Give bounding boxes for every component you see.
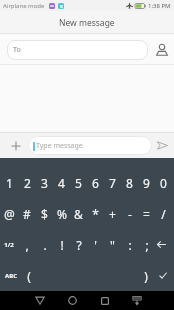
staticText: Type message [36, 141, 83, 151]
staticText: * [92, 206, 99, 222]
staticText: 7 [109, 175, 116, 191]
staticText: 0 [160, 175, 167, 191]
staticText: . [43, 237, 47, 253]
staticText: 6 [92, 175, 99, 191]
staticText: ! [60, 237, 64, 253]
staticText: 1 [6, 175, 13, 191]
staticText: " [110, 237, 115, 253]
staticText: , [25, 237, 29, 253]
staticText: 2 [24, 175, 31, 191]
staticText: ; [145, 237, 149, 253]
staticText: 4 [58, 175, 65, 191]
staticText: 3 [41, 175, 48, 191]
staticText: 8 [126, 175, 133, 191]
staticText: : [128, 237, 132, 253]
staticText: + [109, 206, 116, 222]
staticText: ABC [5, 272, 17, 280]
staticText: To [13, 45, 21, 55]
staticText: ) [144, 268, 148, 284]
staticText: ( [27, 268, 31, 284]
staticText: New message [59, 17, 115, 29]
staticText: 1:38 PM [148, 2, 171, 10]
staticText: # [23, 206, 31, 222]
staticText: = [143, 206, 150, 222]
staticText: @ [4, 206, 15, 222]
staticText: ' [94, 237, 97, 253]
staticText: & [74, 206, 83, 222]
staticText: 5 [75, 175, 82, 191]
staticText: Airplane mode [3, 2, 45, 10]
staticText: $ [41, 206, 48, 222]
staticText: - [128, 206, 132, 222]
staticText: ? [76, 237, 82, 253]
staticText: 1/2 [4, 241, 14, 249]
staticText: 9 [143, 175, 150, 191]
staticText: / [161, 206, 166, 222]
staticText: % [57, 206, 67, 222]
